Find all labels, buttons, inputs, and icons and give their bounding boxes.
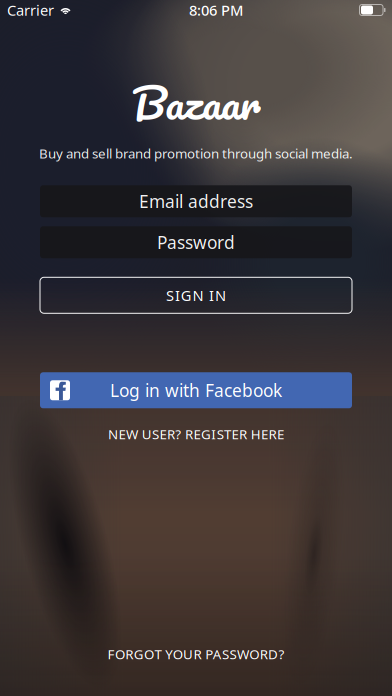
staticText: Email address xyxy=(139,190,253,213)
button[interactable]: Email address xyxy=(40,185,352,217)
button[interactable]: FORGOT YOUR PASSWORD? xyxy=(95,640,296,668)
staticText: Carrier xyxy=(7,0,54,20)
staticText: Log in with Facebook xyxy=(110,379,282,402)
staticText: Bazaar xyxy=(132,66,260,139)
staticText: NEW USER? REGISTER HERE xyxy=(108,425,284,443)
staticText: Buy and sell brand promotion through soc… xyxy=(39,145,353,162)
button[interactable]: NEW USER? REGISTER HERE xyxy=(96,420,296,448)
button[interactable]: Log in with Facebook xyxy=(40,372,352,408)
button[interactable]: SIGN IN xyxy=(40,277,352,313)
staticText: Password xyxy=(157,231,235,254)
staticText: SIGN IN xyxy=(166,285,226,305)
staticText: 8:06 PM xyxy=(189,0,243,20)
button[interactable]: Password xyxy=(40,226,352,258)
staticText: FORGOT YOUR PASSWORD? xyxy=(107,645,284,663)
